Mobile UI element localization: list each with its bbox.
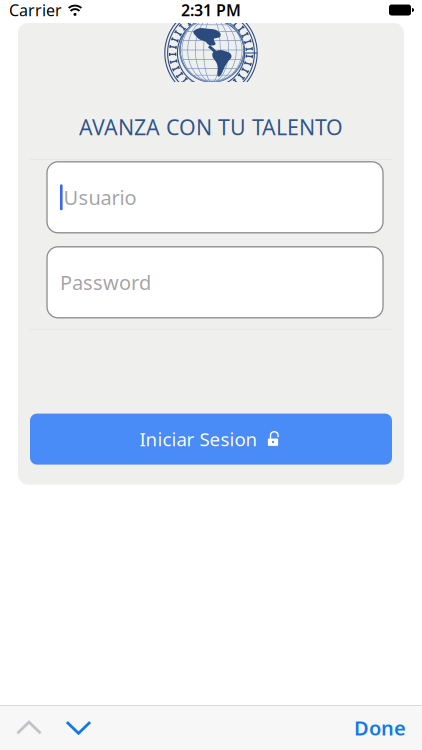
staticText: Usuario (64, 184, 137, 211)
staticText: Carrier (9, 0, 62, 21)
staticText: Password (60, 269, 151, 296)
button[interactable]: Next field (56, 706, 101, 750)
button[interactable]: Done (354, 706, 422, 750)
staticText: Iniciar Sesion (139, 427, 257, 451)
button[interactable]: Iniciar Sesion (30, 414, 392, 465)
staticText: AVANZA CON TU TALENTO (79, 113, 343, 141)
button[interactable]: Previous field (0, 706, 56, 750)
staticText: 2:31 PM (181, 0, 241, 21)
staticText: Done (354, 714, 406, 741)
